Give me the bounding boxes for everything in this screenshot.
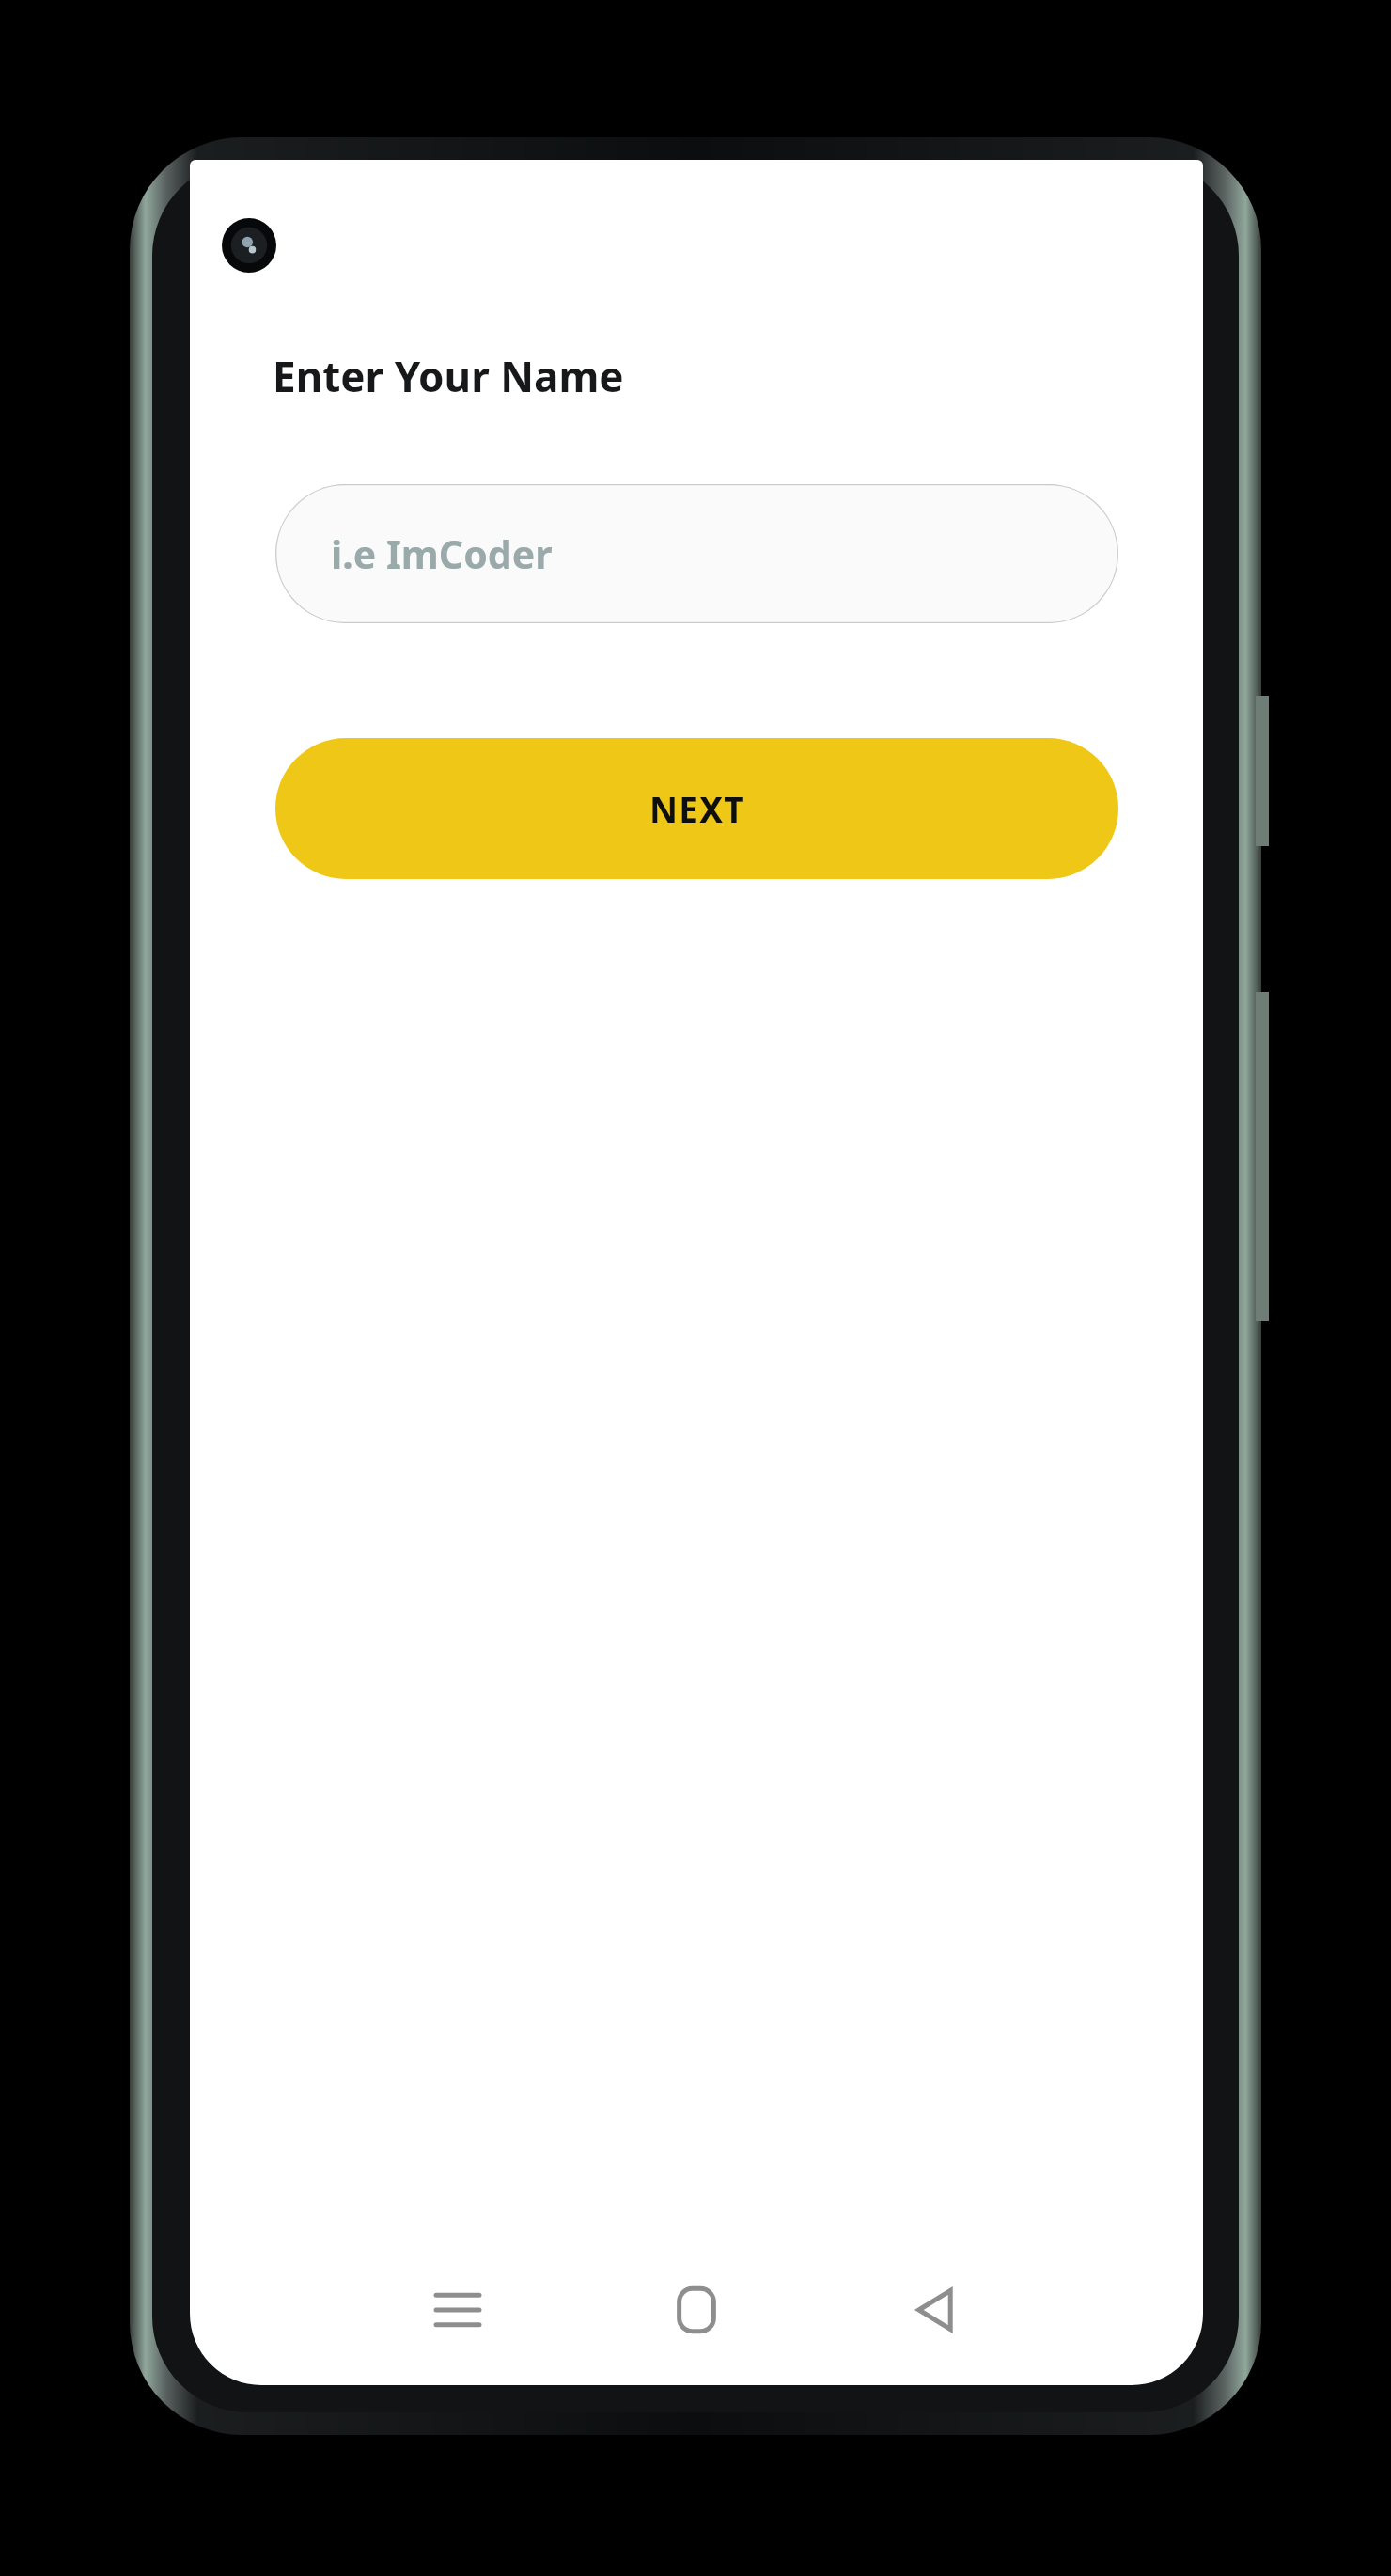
button[interactable]: Home	[645, 2258, 748, 2362]
staticText: i.e ImCoder	[331, 527, 553, 580]
button[interactable]: Recent apps	[406, 2258, 509, 2362]
button[interactable]: NEXT	[275, 738, 1118, 879]
staticText: Enter Your Name	[273, 348, 624, 404]
staticText: NEXT	[649, 785, 745, 832]
button[interactable]: i.e ImCoder	[275, 484, 1118, 623]
button[interactable]: Back	[883, 2258, 987, 2362]
